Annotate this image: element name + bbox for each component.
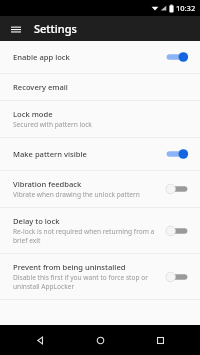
- button[interactable]: Recent apps: [140, 325, 180, 355]
- staticText: Lock mode: [13, 109, 53, 119]
- button[interactable]: Lock mode: [0, 101, 200, 137]
- button[interactable]: Toggle off: [164, 223, 190, 239]
- staticText: Recovery email: [13, 82, 68, 92]
- staticText: Vibrate when drawing the unlock pattern: [13, 190, 140, 199]
- button[interactable]: Enable app lock: [0, 41, 200, 73]
- button[interactable]: Toggle off: [164, 269, 190, 285]
- button[interactable]: Prevent from being uninstalled: [0, 254, 200, 299]
- staticText: Delay to lock: [13, 216, 60, 226]
- button[interactable]: Vibration feedback: [0, 171, 200, 207]
- button[interactable]: Toggle off: [164, 181, 190, 197]
- button[interactable]: Toggle on: [164, 146, 190, 162]
- staticText: Disable this first if you want to force …: [13, 273, 158, 291]
- staticText: Vibration feedback: [13, 179, 82, 189]
- staticText: Prevent from being uninstalled: [13, 262, 126, 272]
- staticText: Secured with pattern lock: [13, 120, 92, 129]
- button[interactable]: Home: [80, 325, 120, 355]
- button[interactable]: Delay to lock: [0, 208, 200, 253]
- button[interactable]: Open navigation menu: [8, 21, 24, 37]
- staticText: Enable app lock: [13, 52, 70, 62]
- button[interactable]: Toggle on: [164, 49, 190, 65]
- staticText: Re-lock is not required when returning f…: [13, 227, 158, 245]
- staticText: Settings: [34, 21, 77, 36]
- staticText: Make pattern visible: [13, 149, 87, 159]
- button[interactable]: Recovery email: [0, 74, 200, 100]
- staticText: 10:32: [176, 3, 196, 13]
- button[interactable]: Make pattern visible: [0, 138, 200, 170]
- button[interactable]: Back: [20, 325, 60, 355]
